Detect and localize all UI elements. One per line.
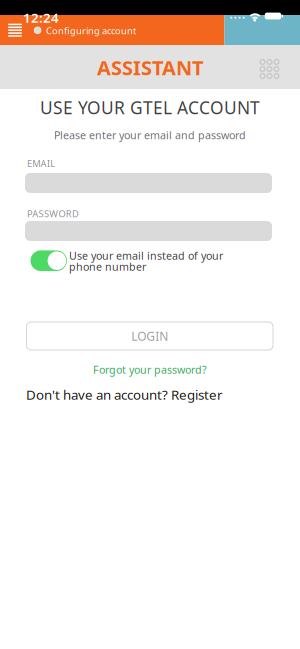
button[interactable]: Apps	[258, 58, 280, 80]
staticText: PASSWORD	[27, 207, 79, 220]
staticText: LOGIN	[131, 328, 168, 344]
staticText: phone number	[69, 259, 146, 274]
button[interactable]: Forgot your password?	[93, 362, 207, 377]
staticText: Use your email instead of your	[69, 248, 223, 263]
staticText: Please enter your email and password	[54, 128, 246, 142]
staticText: Forgot your password?	[93, 362, 207, 377]
staticText: USE YOUR GTEL ACCOUNT	[40, 96, 260, 119]
staticText: 12:24	[23, 9, 59, 26]
staticText: Configuring account	[46, 24, 136, 37]
button[interactable]: Menu	[6, 21, 24, 39]
button[interactable]: LOGIN	[27, 322, 273, 350]
button[interactable]: Use your email instead of your phone num…	[30, 250, 68, 272]
button[interactable]: Don't have an account? Register	[26, 386, 276, 403]
staticText: Don't have an account? Register	[26, 386, 223, 403]
staticText: EMAIL	[27, 157, 55, 170]
staticText: ASSISTANT	[97, 54, 204, 81]
